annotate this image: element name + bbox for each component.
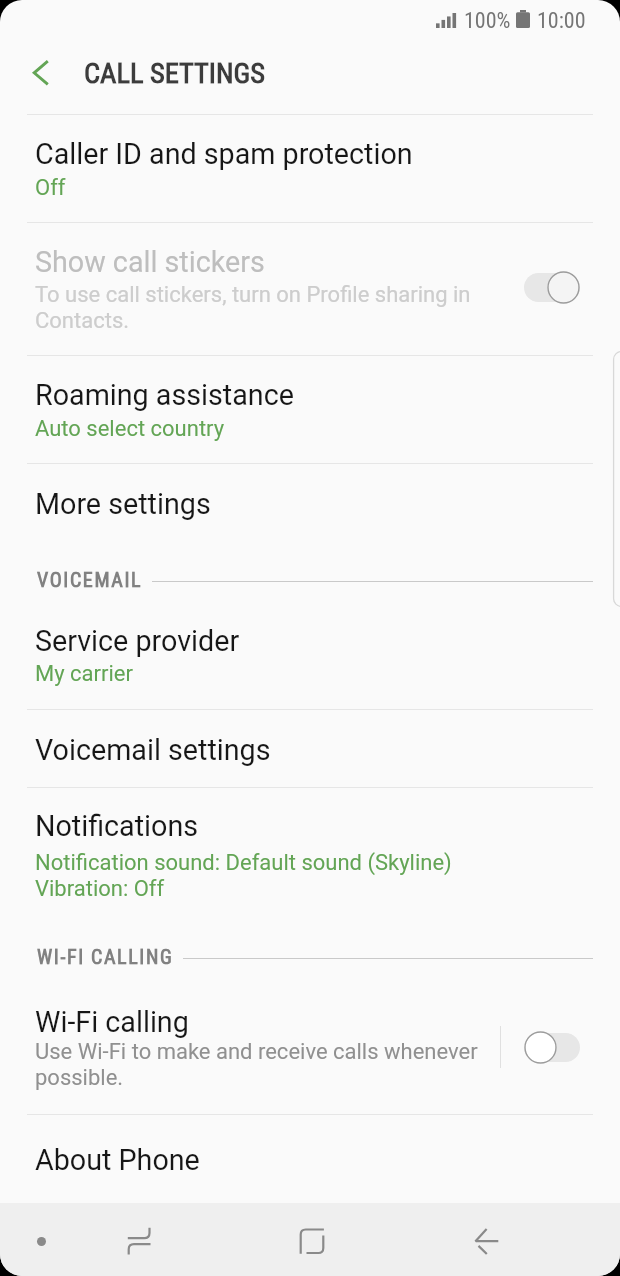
staticText: CALL SETTINGS (84, 57, 266, 90)
staticText: Vibration: Off (35, 876, 165, 902)
button[interactable] (0, 114, 620, 222)
staticText: Notification sound: Default sound (Skyli… (35, 850, 452, 876)
staticText: Roaming assistance (35, 378, 294, 412)
button[interactable]: Navigate up (18, 49, 64, 95)
button[interactable] (0, 463, 620, 581)
staticText: Caller ID and spam protection (35, 137, 413, 171)
button[interactable] (0, 355, 620, 463)
staticText: About Phone (35, 1143, 200, 1177)
staticText: Contacts. (35, 308, 130, 334)
button[interactable]: Page indicator (19, 1219, 63, 1263)
staticText: Off (35, 175, 66, 201)
button[interactable] (0, 1114, 620, 1203)
staticText: Service provider (35, 624, 240, 658)
button[interactable] (0, 958, 620, 1114)
staticText: Voicemail settings (35, 733, 271, 767)
staticText: Auto select country (35, 416, 225, 442)
button[interactable]: Turn off (524, 271, 580, 304)
button[interactable]: Turn on (524, 1031, 580, 1064)
staticText: Show call stickers (35, 245, 265, 279)
staticText: Use Wi-Fi to make and receive calls when… (35, 1039, 478, 1065)
button[interactable] (0, 787, 620, 958)
button[interactable]: Recent apps (112, 1214, 166, 1268)
staticText: 100% (464, 8, 511, 34)
staticText: More settings (35, 487, 211, 521)
staticText: Notifications (35, 809, 199, 843)
staticText: VOICEMAIL (37, 568, 143, 591)
staticText: My carrier (35, 661, 133, 687)
button[interactable] (0, 709, 620, 787)
staticText: 10:00 (537, 8, 586, 34)
staticText: WI-FI CALLING (37, 945, 174, 968)
staticText: possible. (35, 1065, 124, 1091)
staticText: Wi-Fi calling (35, 1005, 189, 1039)
button[interactable]: Home (285, 1214, 339, 1268)
staticText: To use call stickers, turn on Profile sh… (35, 282, 471, 308)
button[interactable] (0, 581, 620, 709)
button[interactable] (0, 222, 620, 355)
button[interactable]: Back (460, 1214, 514, 1268)
